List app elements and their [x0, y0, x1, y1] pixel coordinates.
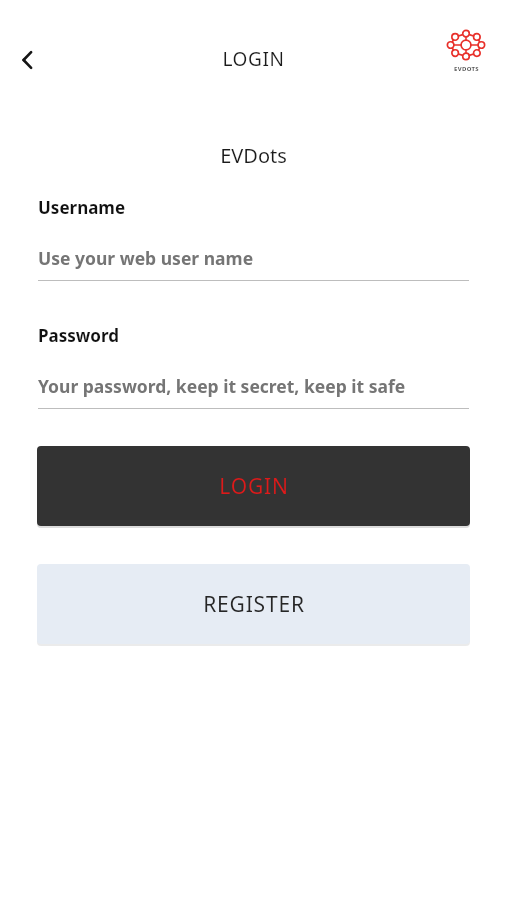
button[interactable]: REGISTER — [37, 564, 470, 644]
button[interactable]: EVDots logo — [441, 30, 491, 80]
staticText: Use your web user name — [38, 246, 254, 270]
staticText: REGISTER — [203, 590, 305, 619]
staticText: Username — [38, 196, 126, 219]
staticText: LOGIN — [219, 472, 289, 501]
staticText: EVDOTS — [454, 65, 479, 73]
button[interactable]: Back — [6, 38, 50, 82]
staticText: EVDots — [0, 142, 507, 169]
staticText: LOGIN — [222, 46, 285, 72]
button[interactable]: Your password, keep it secret, keep it s… — [38, 369, 469, 403]
staticText: Your password, keep it secret, keep it s… — [38, 374, 406, 398]
button[interactable]: LOGIN — [37, 446, 470, 526]
staticText: Password — [38, 324, 119, 347]
button[interactable]: Use your web user name — [38, 241, 469, 275]
